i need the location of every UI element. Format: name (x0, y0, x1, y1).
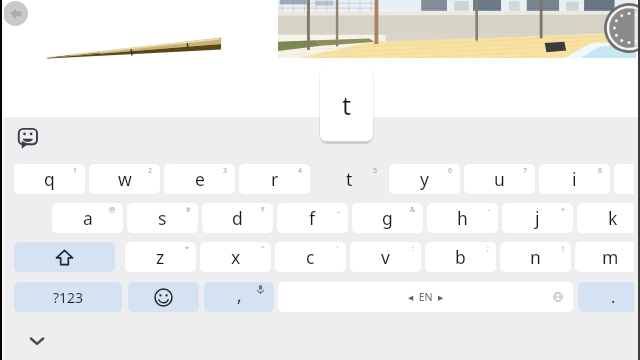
staticText: ◂ EN ▸ (408, 290, 444, 304)
button[interactable]: Comma, voice input (204, 282, 274, 312)
staticText: ; (487, 244, 489, 254)
staticText: y (420, 167, 429, 191)
staticText: s (158, 206, 167, 230)
staticText: d (232, 206, 243, 230)
staticText: ₹ (261, 205, 266, 215)
staticText: t (342, 88, 352, 122)
staticText: e (195, 167, 205, 191)
staticText: @ (109, 205, 116, 215)
staticText: u (494, 167, 505, 191)
staticText: 5 (373, 166, 378, 176)
staticText: # (186, 205, 191, 215)
button[interactable]: q (14, 164, 85, 194)
button[interactable]: u (464, 164, 535, 194)
button[interactable]: d (202, 203, 273, 233)
staticText: 8 (598, 166, 603, 176)
staticText: ' (337, 244, 339, 254)
staticText: ! (562, 244, 564, 254)
staticText: x (231, 245, 241, 269)
staticText: r (271, 167, 279, 191)
button[interactable]: Emoji (128, 282, 199, 312)
button[interactable]: ?123 (14, 282, 122, 312)
button[interactable]: b (425, 242, 496, 272)
button[interactable]: e (164, 164, 235, 194)
button[interactable]: g (352, 203, 423, 233)
staticText: b (455, 245, 466, 269)
staticText: w (118, 167, 132, 191)
staticText: 7 (523, 166, 528, 176)
button[interactable]: Shift (14, 242, 115, 272)
staticText: j (535, 206, 540, 230)
staticText: 4 (298, 166, 303, 176)
button[interactable]: n (500, 242, 571, 272)
staticText: ?123 (53, 288, 84, 307)
staticText: h (457, 206, 468, 230)
button[interactable]: Space (278, 282, 573, 312)
staticText: f (309, 206, 316, 230)
staticText: - (488, 205, 491, 215)
staticText: & (410, 205, 416, 215)
staticText: t (346, 167, 353, 191)
staticText: i (572, 167, 577, 191)
staticText: * (185, 244, 189, 254)
button[interactable]: z (125, 242, 196, 272)
staticText: . (611, 286, 616, 308)
button[interactable]: Stickers (16, 126, 40, 150)
staticText: 3 (223, 166, 228, 176)
button[interactable]: k (577, 203, 634, 233)
staticText: _ (337, 205, 341, 215)
button[interactable]: s (127, 203, 198, 233)
staticText: g (382, 206, 393, 230)
staticText: " (261, 244, 264, 254)
button[interactable]: x (200, 242, 271, 272)
staticText: : (412, 244, 414, 254)
staticText: z (156, 245, 165, 269)
button[interactable]: f (277, 203, 348, 233)
button[interactable]: w (89, 164, 160, 194)
staticText: q (44, 167, 55, 191)
staticText: 1 (73, 166, 78, 176)
staticText: , (237, 283, 242, 307)
button[interactable]: Hide keyboard (28, 332, 46, 350)
button[interactable]: r (239, 164, 310, 194)
button[interactable]: t (314, 164, 385, 194)
button[interactable]: v (350, 242, 421, 272)
button[interactable]: i (539, 164, 610, 194)
button[interactable]: y (389, 164, 460, 194)
staticText: n (530, 245, 541, 269)
button[interactable]: m (575, 242, 634, 272)
staticText: 6 (448, 166, 453, 176)
staticText: k (608, 206, 618, 230)
staticText: a (83, 206, 93, 230)
button[interactable]: Timer (604, 3, 640, 53)
button[interactable]: . (578, 282, 634, 312)
button[interactable]: j (502, 203, 573, 233)
button[interactable]: a (52, 203, 123, 233)
staticText: v (381, 245, 390, 269)
staticText: m (602, 245, 619, 269)
button[interactable]: h (427, 203, 498, 233)
staticText: + (561, 205, 566, 215)
button[interactable]: c (275, 242, 346, 272)
staticText: c (306, 245, 315, 269)
staticText: 2 (148, 166, 153, 176)
button[interactable]: Back (3, 1, 28, 26)
